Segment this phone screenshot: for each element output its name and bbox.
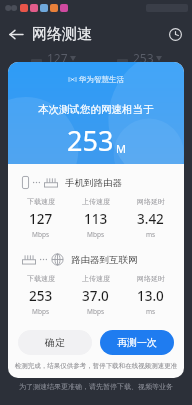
staticText: 为了测速结果更准确，请先暂停下载、视频等业务 [19,382,173,391]
staticText: 本次测试您的网速相当于 [38,103,154,116]
staticText: 上传速度 [82,274,110,283]
button[interactable]: Back [0,18,32,50]
staticText: 路由器到互联网 [71,254,138,266]
staticText: 正在测速 [78,357,114,368]
staticText: 127 [29,210,53,228]
button[interactable]: 再测一次 [100,330,174,355]
staticText: ms [146,230,156,239]
button[interactable]: History [158,18,192,50]
staticText: Mbps [32,230,50,239]
staticText: 手机到路由器 [65,177,122,189]
staticText: 下载速度 [27,197,55,206]
staticText: 13.0 [137,287,164,305]
staticText: 检测完成，结果仅供参考，暂停下载和在线视频测速更准 [14,362,178,370]
staticText: 上传速度 [82,197,110,206]
staticText: 网络延时 [137,274,165,283]
staticText: 网络延时 [137,197,165,206]
staticText: Mbps [87,307,105,316]
staticText: 127 [47,50,68,66]
staticText: 37.0 [82,287,109,305]
staticText: 113 [84,210,108,228]
staticText: 253 [29,287,53,305]
staticText: 253 [133,50,154,66]
staticText: M [116,141,126,156]
button[interactable]: 确定 [18,330,92,355]
staticText: 再测一次 [117,336,157,349]
staticText: 确定 [45,336,65,349]
staticText: 网络测速 [32,25,92,44]
staticText: 华为智慧生活 [79,75,124,84]
staticText: 3.42 [137,210,164,228]
staticText: Mbps [87,230,105,239]
staticText: 下载速度 [27,274,55,283]
staticText: 253 [67,122,114,159]
staticText: Mbps [32,307,50,316]
staticText: ms [146,307,156,316]
button[interactable]: 正在测速 [51,352,141,373]
